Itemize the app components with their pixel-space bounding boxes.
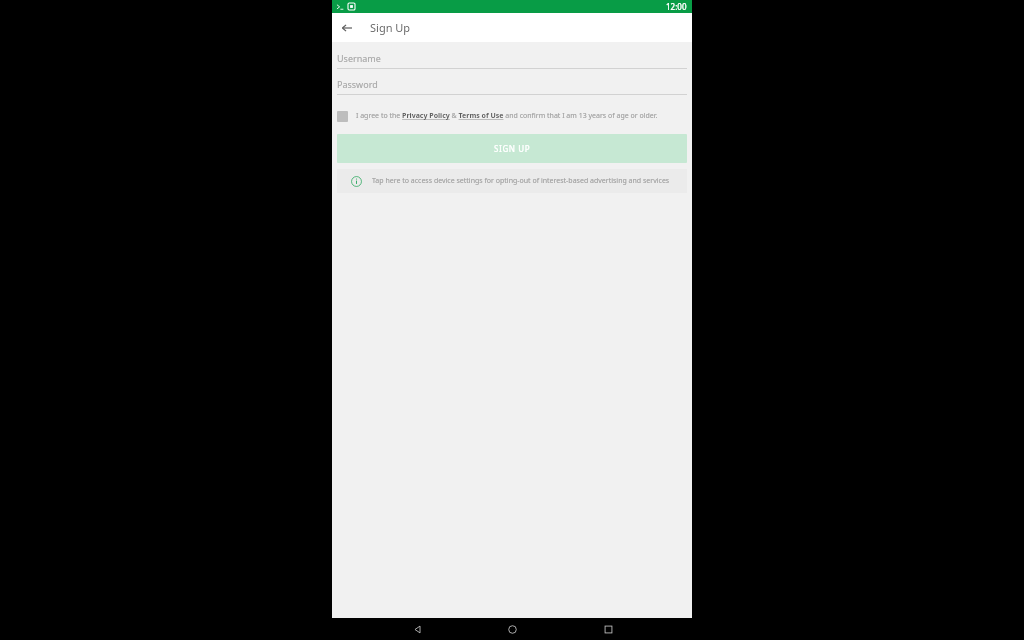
button[interactable]: Tap here to access device settings for o… — [337, 169, 687, 193]
staticText: I agree to the Privacy Policy & Terms of… — [356, 111, 658, 121]
staticText: 12:00 — [666, 1, 687, 12]
button[interactable]: Home — [501, 618, 523, 640]
button[interactable]: I agree to the Privacy Policy & Terms of… — [337, 106, 687, 126]
staticText: Tap here to access device settings for o… — [372, 176, 670, 186]
button[interactable]: Password — [337, 74, 687, 100]
button[interactable]: Back — [406, 618, 428, 640]
staticText: Sign Up — [370, 20, 411, 35]
button[interactable]: SIGN UP — [337, 134, 687, 163]
button[interactable]: Username — [337, 48, 687, 74]
button[interactable]: Back — [332, 13, 361, 42]
staticText: SIGN UP — [494, 143, 531, 154]
staticText: Username — [337, 52, 381, 64]
staticText: Password — [337, 78, 378, 90]
button[interactable]: Recents — [597, 618, 619, 640]
